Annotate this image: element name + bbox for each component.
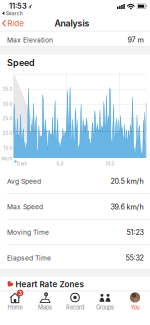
- button[interactable]: Record: [60, 290, 90, 314]
- staticText: 3: [19, 290, 22, 296]
- staticText: Moving Time: [7, 228, 49, 236]
- staticText: 11:53: [9, 1, 27, 10]
- staticText: 20.5 km/h: [110, 177, 143, 185]
- staticText: 5.0: [56, 161, 63, 167]
- staticText: 0 km: [17, 161, 27, 167]
- staticText: You: [130, 304, 139, 311]
- staticText: 15.0: [3, 145, 12, 151]
- button[interactable]: Search: [2, 10, 23, 16]
- button[interactable]: Ride: [3, 18, 24, 28]
- staticText: 51:23: [126, 228, 143, 237]
- staticText: km/h: [1, 156, 12, 161]
- staticText: 10.0: [105, 161, 114, 167]
- staticText: Analysis: [54, 18, 89, 29]
- button[interactable]: You: [120, 290, 150, 314]
- staticText: Avg Speed: [7, 177, 41, 185]
- button[interactable]: 3: [0, 290, 30, 314]
- staticText: Search: [6, 10, 23, 16]
- staticText: 30.0: [2, 101, 12, 107]
- staticText: Ride: [7, 18, 24, 28]
- staticText: Elapsed Time: [7, 254, 51, 262]
- staticText: Maps: [38, 304, 52, 311]
- staticText: 35.0: [2, 86, 12, 92]
- staticText: Max Elevation: [7, 36, 53, 44]
- staticText: 39.6 km/h: [110, 202, 143, 211]
- staticText: Heart Rate Zones: [15, 279, 83, 289]
- staticText: 20.0: [2, 130, 12, 136]
- button[interactable]: Maps: [30, 290, 60, 314]
- staticText: Max Speed: [7, 203, 43, 211]
- button[interactable]: Groups: [90, 290, 120, 314]
- staticText: Home: [7, 304, 22, 311]
- staticText: 55:32: [125, 254, 143, 262]
- staticText: Record: [66, 304, 84, 311]
- staticText: 25.0: [2, 116, 12, 121]
- staticText: Groups: [96, 304, 114, 311]
- staticText: 97 m: [127, 36, 143, 44]
- staticText: Speed: [7, 57, 35, 68]
